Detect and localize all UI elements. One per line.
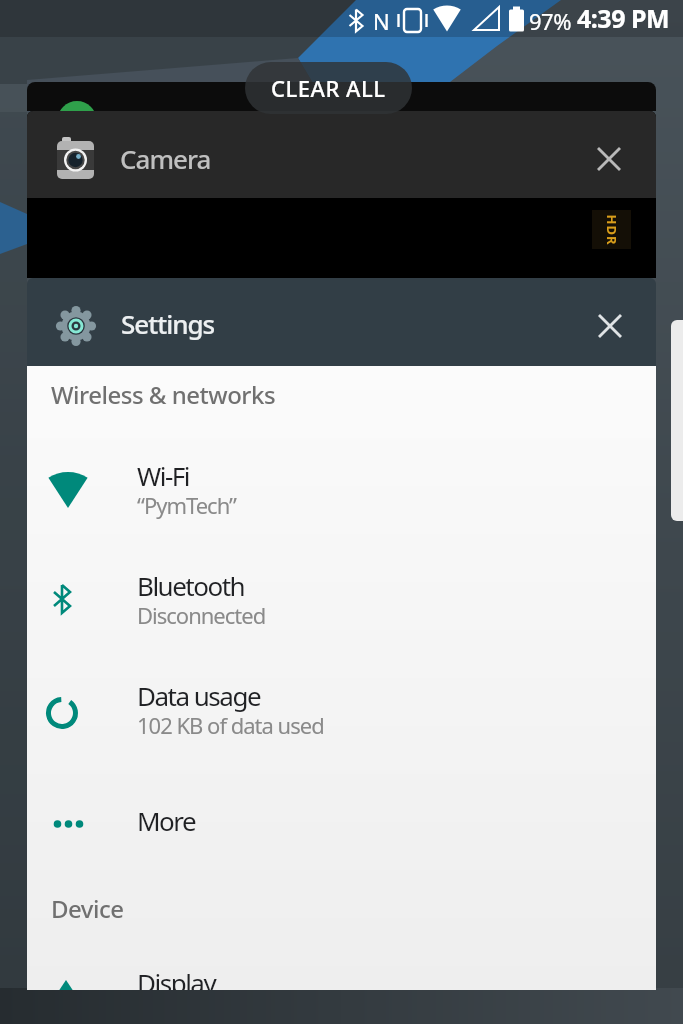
staticText: Disconnected [137, 600, 266, 630]
staticText: Display [137, 965, 216, 990]
staticText: 102 KB of data used [137, 710, 324, 740]
staticText: 97% [529, 6, 571, 36]
staticText: More [137, 803, 196, 838]
staticText: “PymTech” [137, 490, 236, 520]
button[interactable] [27, 777, 656, 873]
button[interactable]: CLEAR ALL [245, 62, 412, 114]
staticText: 4:39 PM [577, 1, 670, 35]
staticText: HDR [602, 214, 620, 245]
button[interactable] [587, 304, 631, 348]
staticText: Settings [121, 306, 215, 341]
staticText: Wireless & networks [51, 378, 276, 411]
staticText: Device [51, 892, 124, 925]
staticText: Camera [120, 141, 211, 176]
button[interactable] [671, 320, 683, 521]
staticText: CLEAR ALL [271, 73, 386, 103]
button[interactable] [27, 667, 656, 777]
button[interactable] [587, 137, 631, 181]
staticText: Data usage [137, 678, 261, 713]
button[interactable] [27, 938, 656, 990]
button[interactable] [27, 111, 656, 198]
button[interactable] [27, 557, 656, 667]
button[interactable] [27, 82, 656, 111]
button[interactable] [27, 278, 656, 366]
staticText: Bluetooth [137, 568, 245, 603]
staticText: Wi-Fi [137, 458, 189, 493]
button[interactable] [27, 447, 656, 557]
staticText: N [373, 6, 390, 36]
